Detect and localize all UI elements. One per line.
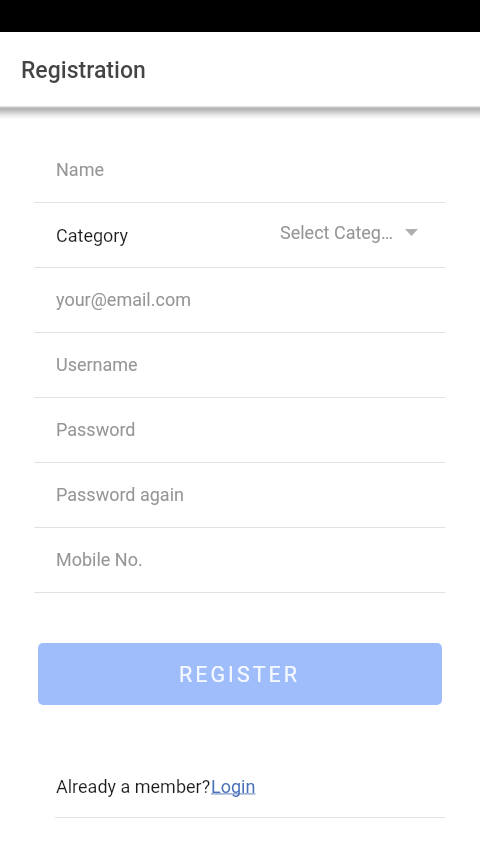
button[interactable]: Password [0,398,480,462]
staticText: Password [56,419,136,440]
staticText: Mobile No. [56,549,143,570]
button[interactable]: REGISTER [38,643,442,705]
button[interactable]: Category [0,203,480,267]
button[interactable]: Mobile No. [0,528,480,592]
staticText: Name [56,159,104,180]
button[interactable]: Name [0,138,480,202]
staticText: Already a member? [56,776,211,797]
button[interactable]: your@email.com [0,268,480,332]
staticText: Password again [56,484,184,505]
staticText: Username [56,354,138,375]
staticText: Registration [21,57,146,84]
staticText: Category [56,225,129,246]
button[interactable]: Select Categ… [280,224,445,245]
staticText: REGISTER [179,662,301,687]
button[interactable]: Username [0,333,480,397]
other: Open category dropdown [405,229,418,236]
button[interactable]: Login [211,776,256,797]
staticText: your@email.com [56,289,191,310]
staticText: Select Categ… [280,222,394,243]
button[interactable]: Password again [0,463,480,527]
